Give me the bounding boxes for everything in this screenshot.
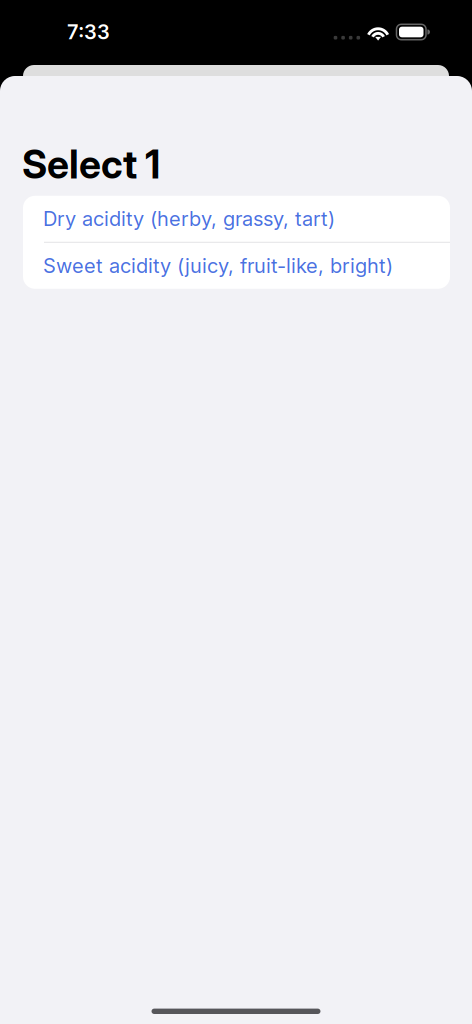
staticText: 7:33 xyxy=(67,20,110,44)
button[interactable]: Dry acidity (herby, grassy, tart) xyxy=(23,196,450,242)
button[interactable]: Sweet acidity (juicy, fruit-like, bright… xyxy=(23,243,450,289)
staticText: Select 1 xyxy=(22,141,160,188)
staticText: Dry acidity (herby, grassy, tart) xyxy=(43,207,335,231)
staticText: Sweet acidity (juicy, fruit-like, bright… xyxy=(43,254,393,278)
